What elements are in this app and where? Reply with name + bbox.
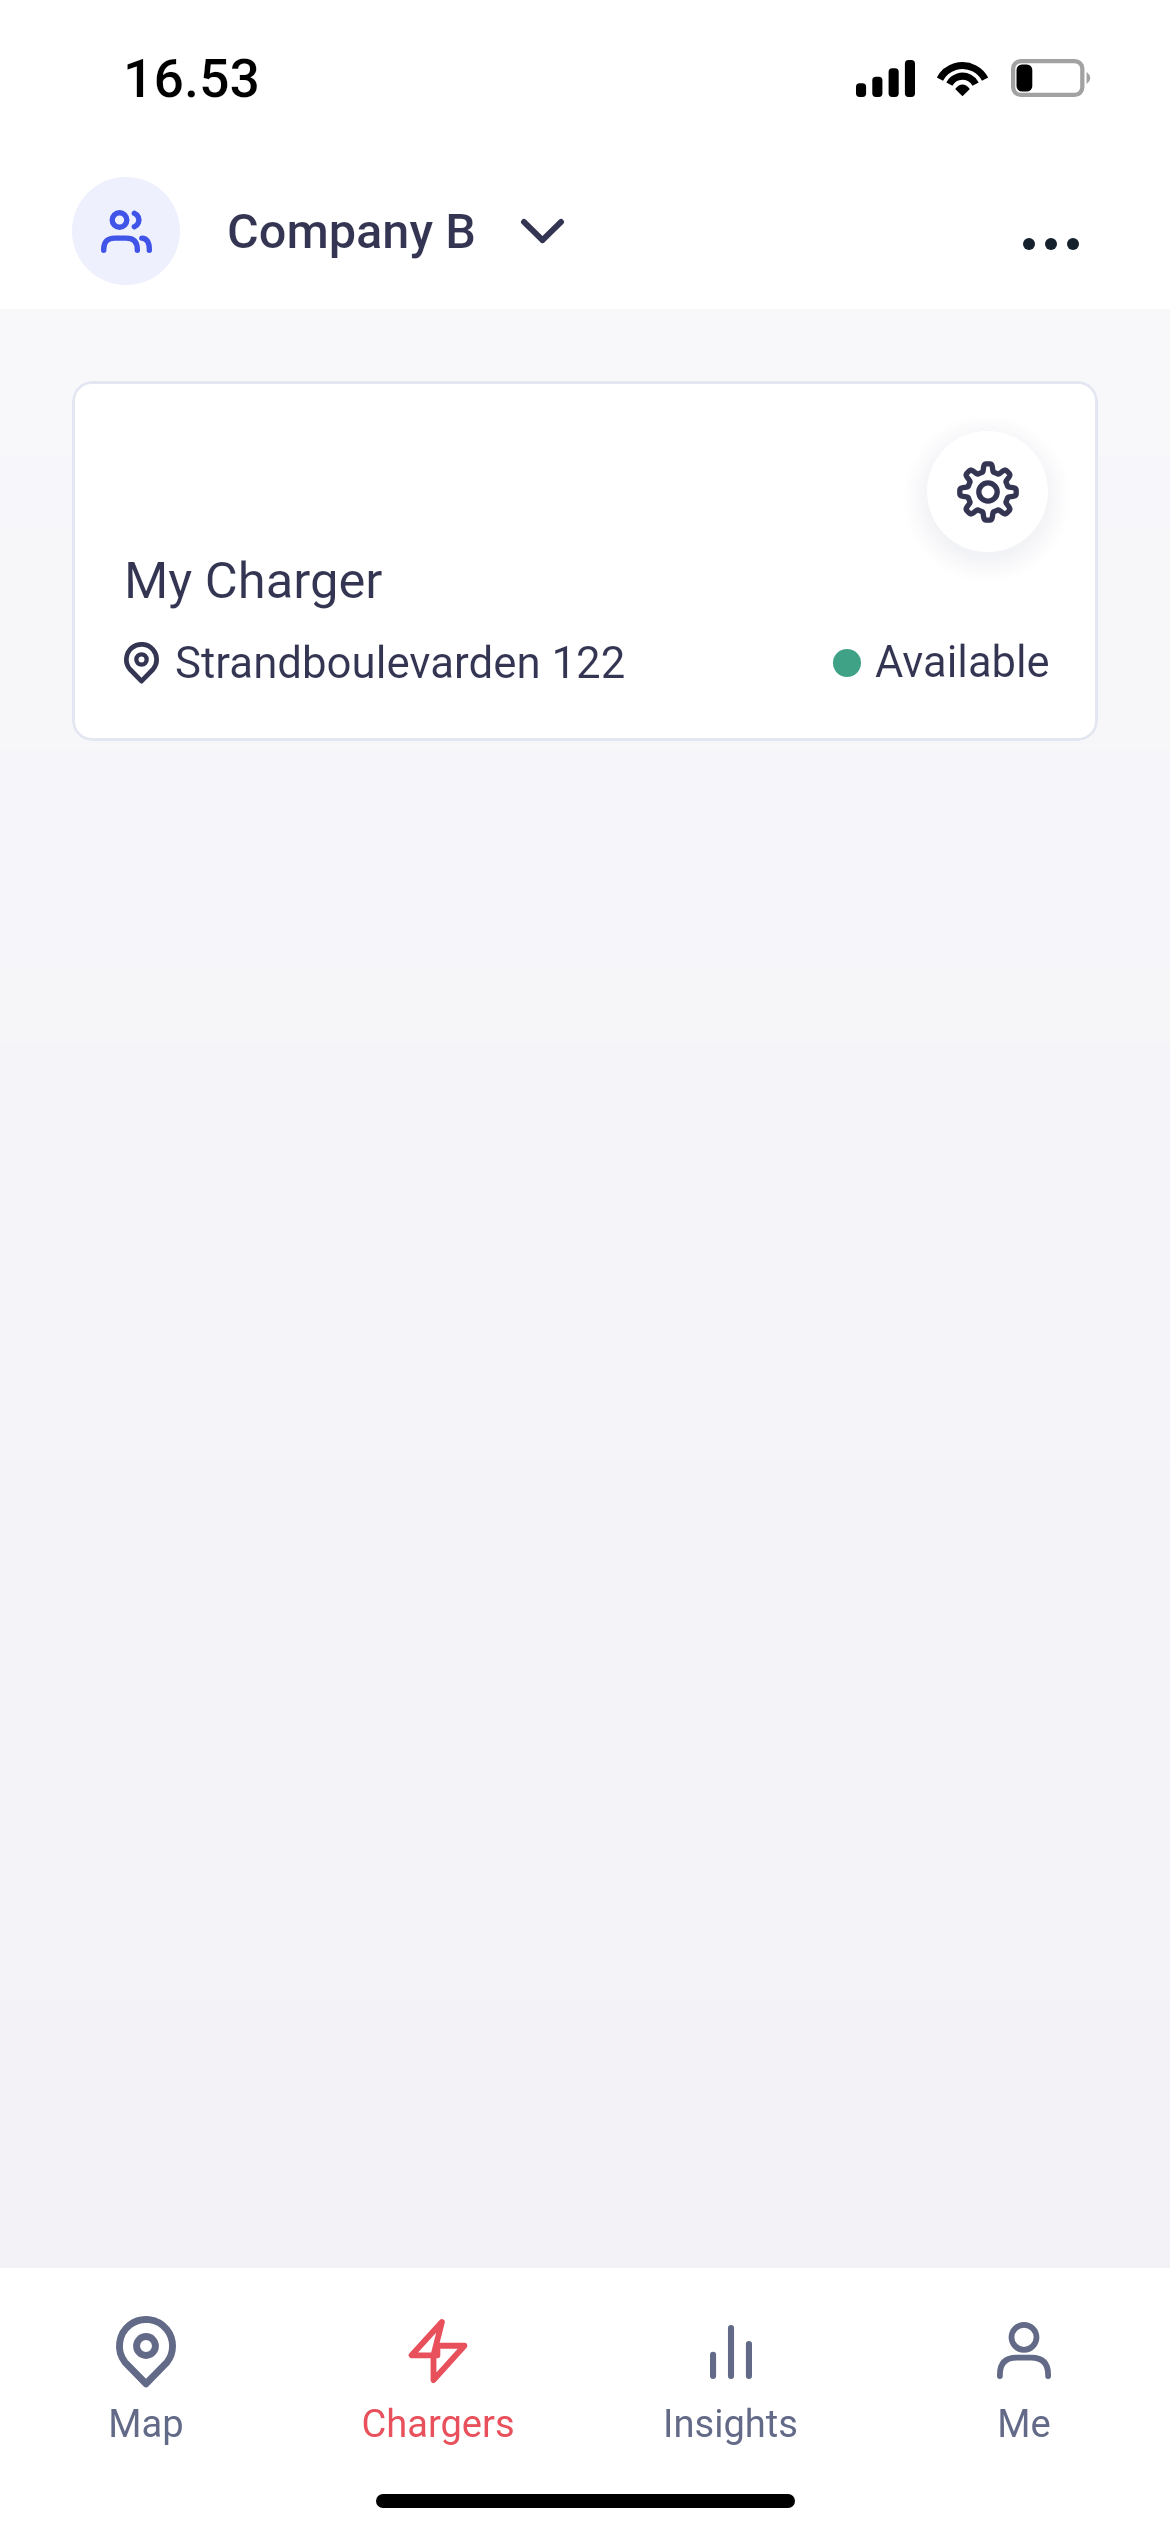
- staticText: Company B: [227, 203, 476, 260]
- button[interactable]: Charger settings: [927, 431, 1048, 552]
- staticText: Me: [997, 2402, 1051, 2447]
- button[interactable]: Company B: [72, 177, 564, 285]
- button[interactable]: Insights: [584, 2268, 877, 2454]
- staticText: Map: [108, 2402, 184, 2447]
- button[interactable]: Map: [0, 2268, 292, 2454]
- staticText: Chargers: [361, 2402, 515, 2447]
- staticText: 16.53: [123, 47, 261, 110]
- button[interactable]: My Charger: [72, 381, 1098, 741]
- staticText: My Charger: [124, 551, 383, 610]
- staticText: Strandboulevarden 122: [175, 637, 626, 688]
- button[interactable]: Me: [877, 2268, 1170, 2454]
- staticText: Available: [875, 637, 1050, 688]
- staticText: Insights: [663, 2402, 798, 2447]
- button[interactable]: Chargers: [292, 2268, 584, 2454]
- button[interactable]: More options: [985, 182, 1117, 305]
